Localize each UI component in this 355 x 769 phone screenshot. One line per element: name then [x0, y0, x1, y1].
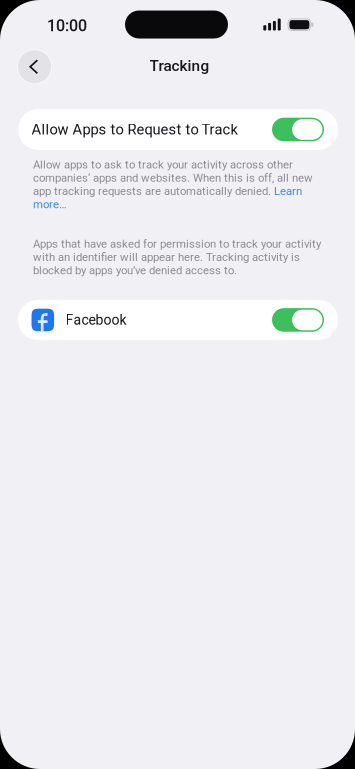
staticText: Facebook [66, 312, 127, 328]
staticText: Allow Apps to Request to Track [31, 121, 237, 138]
staticText: 10:00 [47, 16, 87, 35]
button[interactable]: Allow Apps to Request to Track [18, 109, 338, 150]
button[interactable]: Back [17, 49, 52, 84]
staticText: Tracking [149, 57, 209, 75]
staticText: Apps that have asked for permission to t… [33, 237, 321, 277]
staticText: Allow apps to ask to track your activity… [33, 158, 313, 211]
button[interactable]: Facebook [18, 300, 338, 340]
